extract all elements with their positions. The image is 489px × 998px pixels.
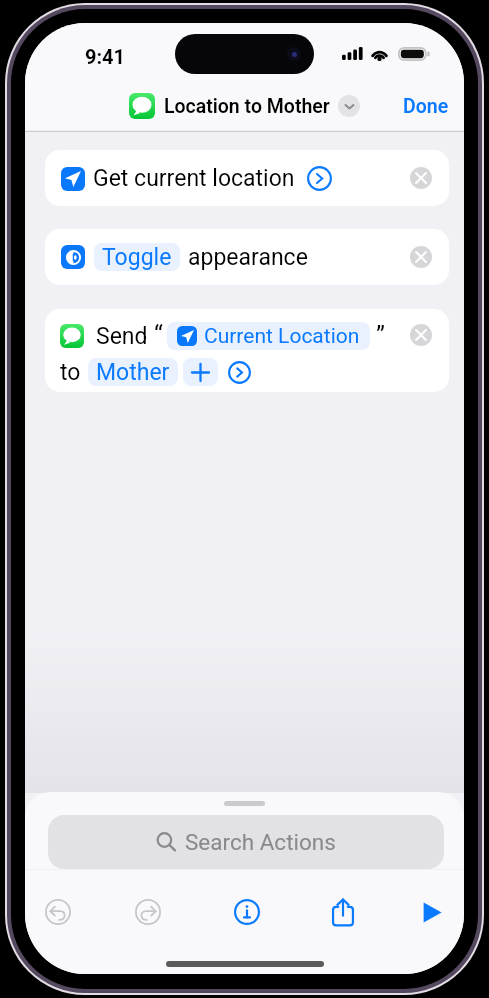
staticText: 9:41 <box>85 45 126 68</box>
button[interactable]: Redo <box>128 892 168 932</box>
button[interactable]: Delete action <box>410 167 432 189</box>
button[interactable]: Show details <box>228 361 251 384</box>
button[interactable]: Get current location <box>45 150 449 206</box>
button[interactable]: Done <box>389 87 464 126</box>
staticText: Current Location <box>204 324 360 349</box>
staticText: Search Actions <box>185 829 336 855</box>
button[interactable]: Search Actions <box>48 815 444 869</box>
button[interactable]: Shortcut options <box>338 95 360 117</box>
button[interactable]: Run shortcut <box>412 892 452 932</box>
staticText: Get current location <box>93 165 295 192</box>
button[interactable]: Delete action <box>410 246 432 268</box>
button[interactable]: Send <box>45 309 449 392</box>
button[interactable]: Show details <box>307 166 332 191</box>
staticText: to <box>60 359 81 386</box>
button[interactable]: Delete action <box>410 324 432 346</box>
staticText: Toggle <box>102 244 172 271</box>
staticText: Mother <box>96 359 170 386</box>
button[interactable]: Info <box>227 892 267 932</box>
button[interactable]: Toggle <box>45 229 449 285</box>
button[interactable]: Add recipient <box>183 358 218 386</box>
staticText: Location to Mother <box>164 95 330 118</box>
staticText: appearance <box>188 244 308 271</box>
staticText: Send <box>96 323 148 350</box>
staticText: Done <box>403 95 449 118</box>
button[interactable]: Undo <box>38 892 78 932</box>
staticText: ” <box>376 321 385 349</box>
button[interactable]: Share <box>323 892 363 932</box>
staticText: “ <box>154 321 163 349</box>
